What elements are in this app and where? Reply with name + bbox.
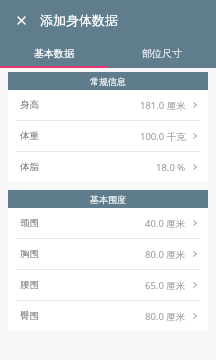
staticText: 颈围 [20,217,39,229]
staticText: 181.0 厘米 [140,99,186,112]
button[interactable]: 腰围 [8,270,208,300]
staticText: 80.0 厘米 [145,248,186,261]
button[interactable]: 胸围 [8,239,208,269]
button[interactable]: 体重 [8,121,208,151]
button[interactable]: Close [11,10,31,30]
staticText: 腰围 [20,279,39,291]
staticText: 臀围 [20,310,39,322]
staticText: 40.0 厘米 [145,217,186,230]
staticText: 胸围 [20,248,39,260]
staticText: 65.0 厘米 [145,279,186,292]
staticText: 常规信息 [90,76,126,87]
staticText: 80.0 厘米 [145,310,186,323]
button[interactable]: 基本数据 [0,40,108,66]
button[interactable]: 体脂 [8,152,208,182]
staticText: 基本围度 [90,194,126,205]
staticText: 添加身体数据 [40,12,118,28]
button[interactable]: 身高 [8,90,208,120]
staticText: 100.0 千克 [140,130,186,143]
staticText: 身高 [20,99,39,111]
staticText: 基本数据 [34,47,74,60]
button[interactable]: 颈围 [8,208,208,238]
staticText: 体脂 [20,161,39,173]
button[interactable]: 臀围 [8,301,208,331]
staticText: 18.0 % [156,161,186,174]
button[interactable]: 部位尺寸 [108,40,216,66]
staticText: 体重 [20,130,39,142]
staticText: 部位尺寸 [142,47,182,60]
